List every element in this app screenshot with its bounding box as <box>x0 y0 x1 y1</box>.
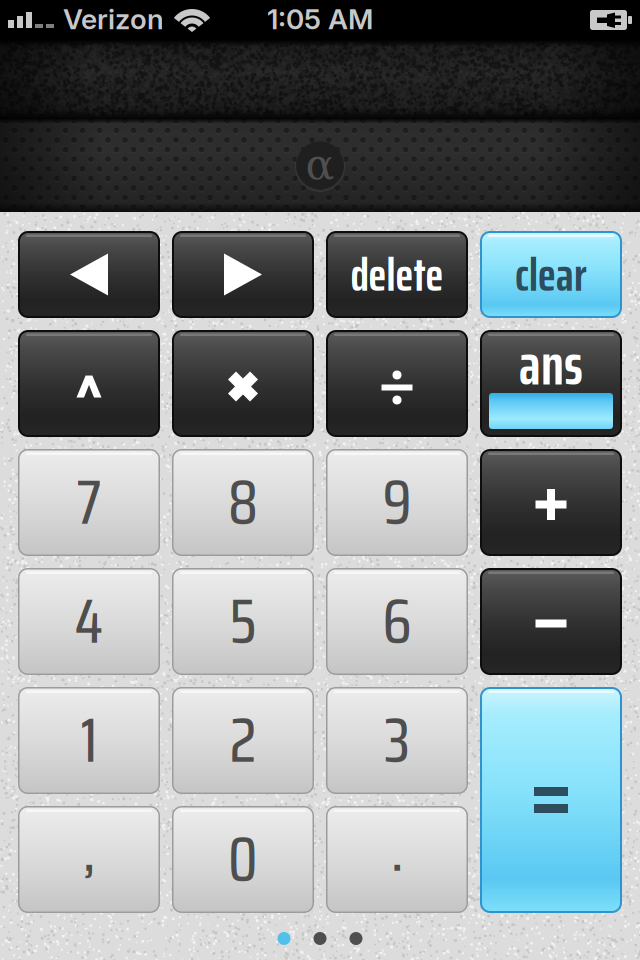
staticText: clear <box>515 238 587 311</box>
staticText: 5 <box>229 573 256 670</box>
staticText: Verizon <box>63 2 164 36</box>
button[interactable]: 6 <box>326 568 468 675</box>
staticText: 8 <box>228 454 258 551</box>
staticText: , <box>83 801 95 898</box>
button[interactable]: Multiply <box>172 330 314 437</box>
button[interactable]: 9 <box>326 449 468 556</box>
button[interactable]: 5 <box>172 568 314 675</box>
button[interactable]: 7 <box>18 449 160 556</box>
staticText: ans <box>519 319 583 410</box>
button[interactable]: , <box>18 806 160 913</box>
staticText: α <box>305 140 334 189</box>
button[interactable]: 3 <box>326 687 468 794</box>
button[interactable]: delete <box>326 231 468 318</box>
button[interactable]: Minus <box>480 568 622 675</box>
staticText: . <box>391 801 403 898</box>
staticText: delete <box>350 238 443 311</box>
staticText: 6 <box>382 573 411 670</box>
button[interactable]: 4 <box>18 568 160 675</box>
staticText: 3 <box>384 692 410 789</box>
staticText: 7 <box>76 454 101 551</box>
button[interactable]: 2 <box>172 687 314 794</box>
staticText: 0 <box>228 811 258 908</box>
button[interactable]: 1 <box>18 687 160 794</box>
staticText: 1:05 AM <box>267 2 373 36</box>
button[interactable]: Divide <box>326 330 468 437</box>
staticText: 4 <box>74 573 103 670</box>
staticText: 9 <box>382 454 411 551</box>
button[interactable]: Power <box>18 330 160 437</box>
button[interactable]: Move cursor left <box>18 231 160 318</box>
button[interactable]: clear <box>480 231 622 318</box>
button[interactable]: 8 <box>172 449 314 556</box>
button[interactable]: Plus <box>480 449 622 556</box>
button[interactable]: Move cursor right <box>172 231 314 318</box>
button[interactable]: ans <box>480 330 622 437</box>
staticText: 2 <box>229 692 256 789</box>
button[interactable]: 0 <box>172 806 314 913</box>
button[interactable]: Equals <box>480 687 622 913</box>
staticText: 1 <box>80 692 97 789</box>
button[interactable]: . <box>326 806 468 913</box>
